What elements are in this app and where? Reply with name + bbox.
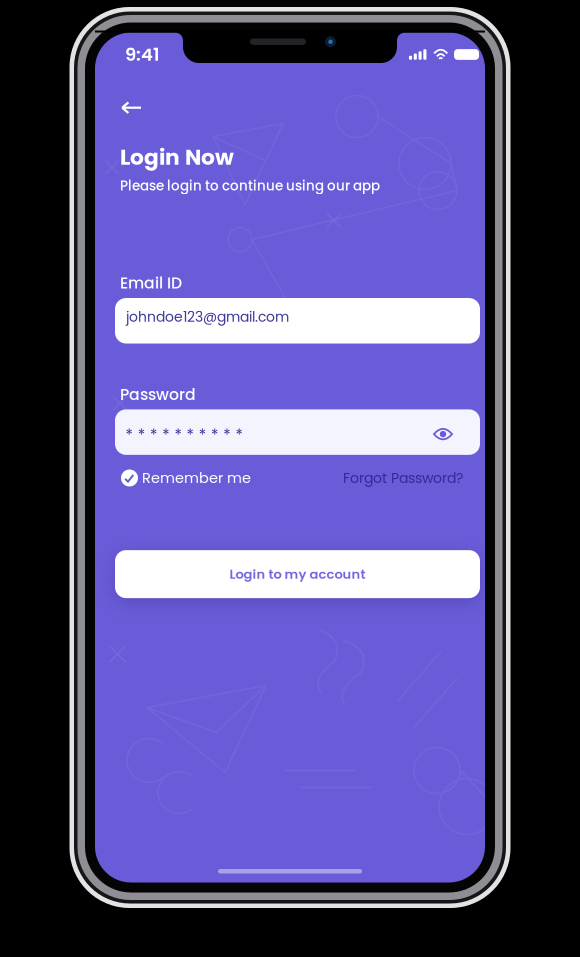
staticText: * bbox=[138, 424, 145, 446]
staticText: Email ID bbox=[120, 272, 182, 294]
button[interactable]: Remember me bbox=[121, 463, 251, 493]
staticText: Password bbox=[120, 383, 196, 405]
button[interactable]: Forgot Password? bbox=[343, 463, 463, 493]
button[interactable]: Back bbox=[114, 94, 149, 121]
staticText: * bbox=[126, 424, 133, 446]
staticText: * bbox=[150, 424, 157, 446]
staticText: johndoe123@gmail.com bbox=[126, 307, 289, 326]
staticText: Remember me bbox=[142, 468, 251, 488]
button[interactable]: Show password bbox=[429, 421, 457, 443]
staticText: Login to my account bbox=[229, 565, 365, 583]
staticText: * bbox=[199, 424, 206, 446]
staticText: Login Now bbox=[120, 142, 234, 172]
staticText: * bbox=[235, 424, 242, 446]
staticText: * bbox=[174, 424, 181, 446]
staticText: 9:41 bbox=[125, 42, 160, 67]
staticText: * bbox=[211, 424, 218, 446]
staticText: * bbox=[223, 424, 230, 446]
staticText: * bbox=[187, 424, 194, 446]
staticText: Please login to continue using our app bbox=[120, 176, 380, 195]
staticText: Forgot Password? bbox=[343, 468, 463, 488]
button[interactable]: Login to my account bbox=[115, 550, 480, 598]
staticText: * bbox=[162, 424, 169, 446]
